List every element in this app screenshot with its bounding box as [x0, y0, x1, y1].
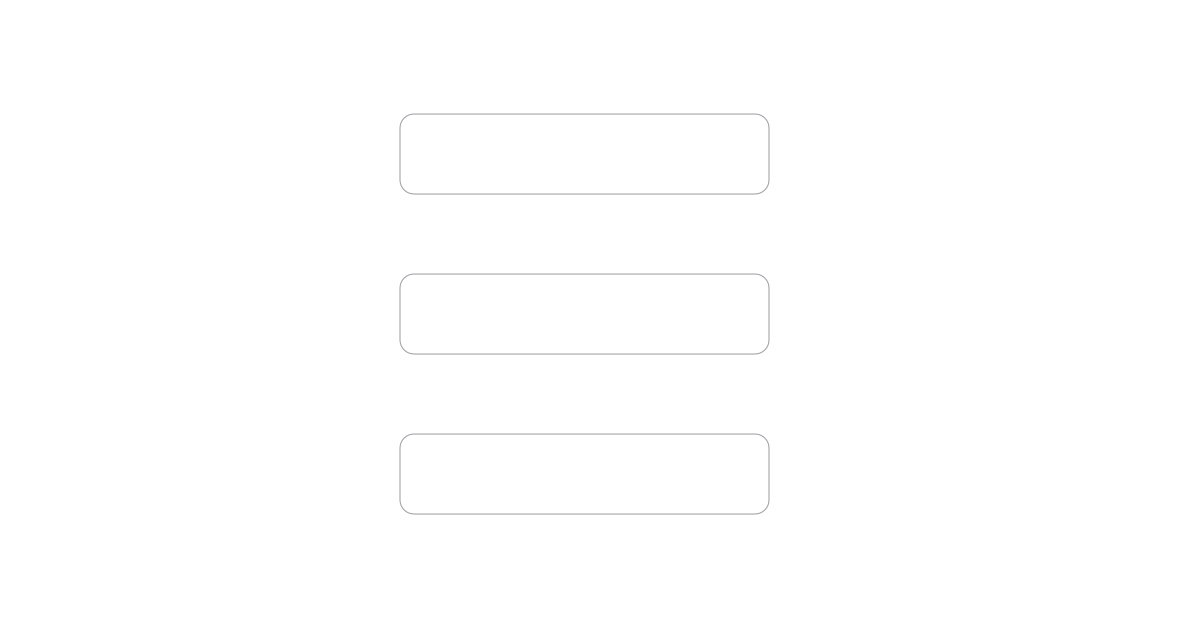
button[interactable]: Card 3: [400, 434, 769, 514]
button[interactable]: Card 1: [400, 114, 769, 194]
button[interactable]: Card 2: [400, 274, 769, 354]
